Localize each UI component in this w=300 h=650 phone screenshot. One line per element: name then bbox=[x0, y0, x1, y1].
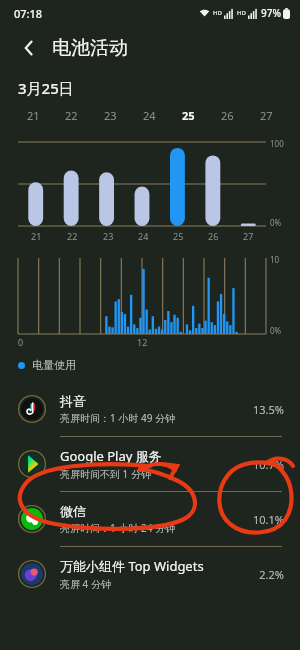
button[interactable]: 26 bbox=[208, 106, 247, 124]
button[interactable]: 23 bbox=[91, 106, 130, 124]
staticText: 亮屏时间：1 小时 24 分钟 bbox=[60, 521, 175, 535]
staticText: 亮屏时间不到 1 分钟 bbox=[60, 467, 151, 481]
button[interactable]: Back bbox=[12, 31, 46, 65]
staticText: 26 bbox=[221, 108, 234, 123]
button[interactable]: 24 bbox=[130, 106, 169, 124]
staticText: 97% bbox=[261, 6, 281, 20]
button[interactable]: 21 bbox=[14, 106, 52, 124]
staticText: 21 bbox=[31, 230, 42, 242]
staticText: 25 bbox=[173, 230, 184, 242]
button[interactable]: 抖音 bbox=[0, 382, 300, 436]
staticText: 0 bbox=[18, 336, 24, 348]
staticText: HD bbox=[213, 9, 222, 17]
staticText: 10.1% bbox=[253, 512, 284, 527]
staticText: 电池活动 bbox=[52, 36, 128, 60]
staticText: 亮屏时间：1 小时 49 分钟 bbox=[60, 411, 175, 425]
staticText: 100 bbox=[270, 138, 284, 149]
staticText: 亮屏 4 分钟 bbox=[60, 577, 111, 591]
staticText: Google Play 服务 bbox=[60, 447, 162, 465]
staticText: 10 bbox=[270, 254, 280, 265]
button[interactable]: 万能小组件 Top Widgets bbox=[0, 547, 300, 601]
staticText: 27 bbox=[243, 230, 254, 242]
staticText: 27 bbox=[260, 108, 273, 123]
staticText: 0% bbox=[270, 325, 282, 336]
staticText: 25 bbox=[182, 108, 195, 123]
staticText: 21 bbox=[27, 108, 40, 123]
staticText: HD bbox=[237, 9, 246, 17]
staticText: 抖音 bbox=[60, 393, 86, 409]
staticText: 26 bbox=[208, 230, 219, 242]
button[interactable]: 25 bbox=[169, 106, 208, 124]
staticText: 2.2% bbox=[259, 567, 284, 582]
button[interactable]: 22 bbox=[52, 106, 91, 124]
staticText: 23 bbox=[103, 230, 114, 242]
staticText: 13.5% bbox=[253, 402, 284, 417]
button[interactable]: Google Play 服务 bbox=[0, 437, 300, 491]
staticText: 24 bbox=[138, 230, 149, 242]
button[interactable]: 27 bbox=[247, 106, 286, 124]
staticText: 24 bbox=[143, 108, 156, 123]
staticText: 10.7% bbox=[253, 457, 284, 472]
staticText: 0% bbox=[270, 217, 282, 228]
staticText: 07:18 bbox=[14, 6, 43, 21]
staticText: 电量使用 bbox=[32, 358, 76, 372]
staticText: 23 bbox=[104, 108, 117, 123]
button[interactable]: 微信 bbox=[0, 492, 300, 546]
staticText: 微信 bbox=[60, 503, 86, 519]
staticText: 22 bbox=[65, 108, 78, 123]
staticText: 22 bbox=[67, 230, 78, 242]
staticText: 12 bbox=[137, 336, 148, 348]
staticText: 万能小组件 Top Widgets bbox=[60, 557, 204, 575]
staticText: 3月25日 bbox=[18, 78, 74, 98]
